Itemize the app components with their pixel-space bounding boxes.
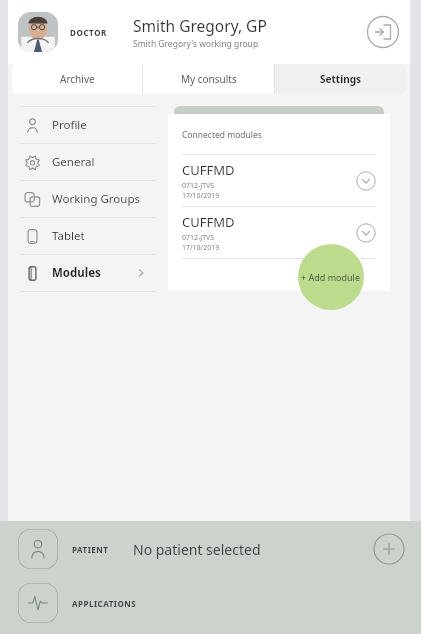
button[interactable]: Add patient: [373, 533, 405, 565]
staticText: Settings: [320, 72, 361, 86]
button[interactable]: Modules: [20, 255, 156, 291]
staticText: 17/10/2019: [182, 191, 220, 201]
button[interactable]: General: [20, 144, 156, 180]
staticText: 0712-JTVS: [182, 181, 215, 191]
button[interactable]: Settings: [275, 64, 406, 94]
staticText: APPLICATIONS: [72, 598, 137, 609]
button[interactable]: Menu item: [18, 529, 58, 569]
staticText: Connected modules: [182, 129, 262, 141]
staticText: Tablet: [52, 228, 85, 244]
button[interactable]: CUFFMD: [182, 155, 376, 206]
staticText: 0712-JTVS: [182, 233, 215, 243]
staticText: No patient selected: [133, 540, 261, 559]
button[interactable]: Archive: [12, 64, 142, 94]
staticText: PATIENT: [72, 544, 109, 555]
button[interactable]: Profile: [20, 107, 156, 143]
staticText: General: [52, 154, 95, 170]
staticText: Smith Gregory's working group: [133, 38, 259, 50]
staticText: Working Groups: [52, 191, 140, 207]
staticText: CUFFMD: [182, 161, 235, 179]
button[interactable]: + Add module: [298, 244, 364, 310]
button[interactable]: Working Groups: [20, 181, 156, 217]
button[interactable]: Log out: [366, 15, 400, 49]
staticText: Smith Gregory, GP: [133, 15, 267, 36]
staticText: DOCTOR: [70, 27, 107, 38]
button[interactable]: Tablet: [20, 218, 156, 254]
button[interactable]: CUFFMD: [182, 207, 376, 258]
staticText: Archive: [60, 72, 95, 86]
staticText: Profile: [52, 117, 87, 133]
staticText: Modules: [52, 265, 101, 281]
staticText: CUFFMD: [182, 213, 235, 231]
button[interactable]: Menu item: [18, 583, 58, 623]
staticText: + Add module: [301, 271, 361, 283]
staticText: My consults: [181, 72, 237, 86]
button[interactable]: My consults: [143, 64, 274, 94]
staticText: 17/10/2019: [182, 243, 220, 253]
